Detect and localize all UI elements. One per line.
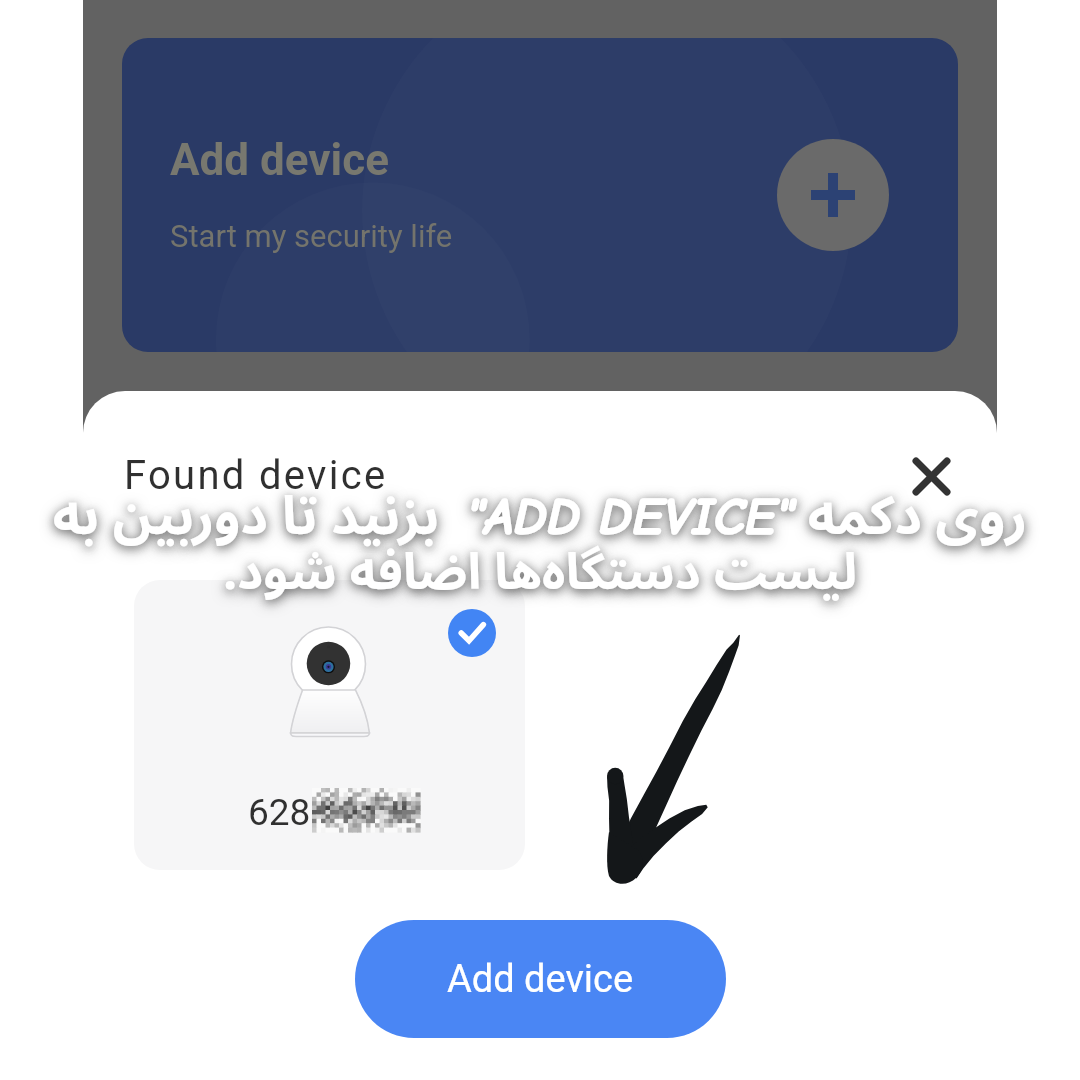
button[interactable]: Close (899, 444, 963, 508)
button[interactable]: Add device (777, 139, 889, 251)
staticText: Add device (170, 134, 389, 186)
button[interactable]: Selected (448, 609, 496, 657)
staticText: لیست دستگاه‌ها اضافه شود. (0, 520, 1080, 626)
staticText: 628 (248, 791, 311, 834)
staticText: لیست دستگاه‌ها اضافه شود. (0, 520, 1080, 626)
staticText: روی دکمه "ADD DEVICE" بزنید تا دوربین به (0, 461, 1080, 573)
staticText: Start my security life (170, 218, 453, 254)
button[interactable]: 628 (134, 580, 525, 870)
staticText: Found device (124, 452, 388, 499)
staticText: روی دکمه "ADD DEVICE" بزنید تا دوربین به (0, 461, 1080, 573)
staticText: Add device (447, 957, 634, 1002)
button[interactable]: Add device (122, 38, 958, 352)
button[interactable]: Add device (355, 920, 726, 1038)
